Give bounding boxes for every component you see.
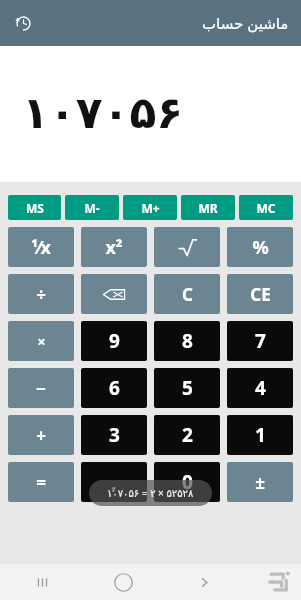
staticText: ۱۰۷۰۵۶ xyxy=(22,87,184,138)
button[interactable]: = xyxy=(8,462,74,502)
button[interactable]: MR xyxy=(181,195,235,220)
button[interactable]: ± xyxy=(227,462,293,502)
staticText: 3 xyxy=(109,422,120,448)
button[interactable]: M- xyxy=(65,195,119,220)
button[interactable]: 6 xyxy=(81,368,147,408)
staticText: ± xyxy=(255,471,265,494)
staticText: 4 xyxy=(255,375,266,401)
button[interactable]: 7 xyxy=(227,321,293,361)
staticText: ¹⁄x xyxy=(31,235,51,260)
button[interactable]: 9 xyxy=(81,321,147,361)
button[interactable]: 1 xyxy=(227,415,293,455)
staticText: + xyxy=(36,424,46,447)
staticText: 0 xyxy=(182,469,193,495)
staticText: MC xyxy=(256,200,276,216)
button[interactable]: , xyxy=(81,462,147,502)
button[interactable]: ÷ xyxy=(8,274,74,314)
staticText: 9 xyxy=(109,328,120,354)
staticText: MR xyxy=(198,200,218,216)
button[interactable]: Backspace xyxy=(81,274,147,314)
staticText: 7 xyxy=(255,328,266,354)
staticText: C xyxy=(182,283,193,306)
button[interactable]: + xyxy=(8,415,74,455)
button[interactable]: CE xyxy=(227,274,293,314)
staticText: ۱۰۷۰۵۶ = ۲ × ۵۲۵۲۸ xyxy=(107,486,194,500)
staticText: 8 xyxy=(182,328,193,354)
button[interactable]: 5 xyxy=(154,368,220,408)
button[interactable]: 0 xyxy=(154,462,220,502)
button[interactable]: × xyxy=(8,321,74,361)
button[interactable]: Home xyxy=(105,564,141,600)
staticText: ÷ xyxy=(36,283,46,306)
button[interactable]: x² xyxy=(81,227,147,267)
button[interactable]: C xyxy=(154,274,220,314)
button[interactable]: MC xyxy=(239,195,293,220)
button[interactable]: 3 xyxy=(81,415,147,455)
button[interactable]: 8 xyxy=(154,321,220,361)
button[interactable]: % xyxy=(227,227,293,267)
staticText: % xyxy=(252,235,269,260)
staticText: MS xyxy=(26,200,44,216)
staticText: 1 xyxy=(255,422,266,448)
button[interactable]: Square root xyxy=(154,227,220,267)
staticText: ماشین حساب xyxy=(202,13,289,33)
staticText: M- xyxy=(84,200,100,216)
staticText: 5 xyxy=(182,375,193,401)
button[interactable]: ¹⁄x xyxy=(8,227,74,267)
staticText: 6 xyxy=(109,375,120,401)
button[interactable]: M+ xyxy=(123,195,177,220)
staticText: , xyxy=(111,469,117,495)
staticText: 2 xyxy=(182,422,193,448)
button[interactable]: MS xyxy=(8,195,61,220)
staticText: CE xyxy=(250,283,271,306)
button[interactable]: History xyxy=(6,6,40,40)
staticText: M+ xyxy=(141,200,160,216)
button[interactable]: Recents xyxy=(24,564,60,600)
staticText: − xyxy=(36,377,46,400)
staticText: = xyxy=(36,471,46,494)
staticText: × xyxy=(37,332,46,351)
button[interactable]: 4 xyxy=(227,368,293,408)
button[interactable]: Back xyxy=(186,564,222,600)
button[interactable]: 2 xyxy=(154,415,220,455)
button[interactable]: − xyxy=(8,368,74,408)
staticText: x² xyxy=(105,235,123,260)
